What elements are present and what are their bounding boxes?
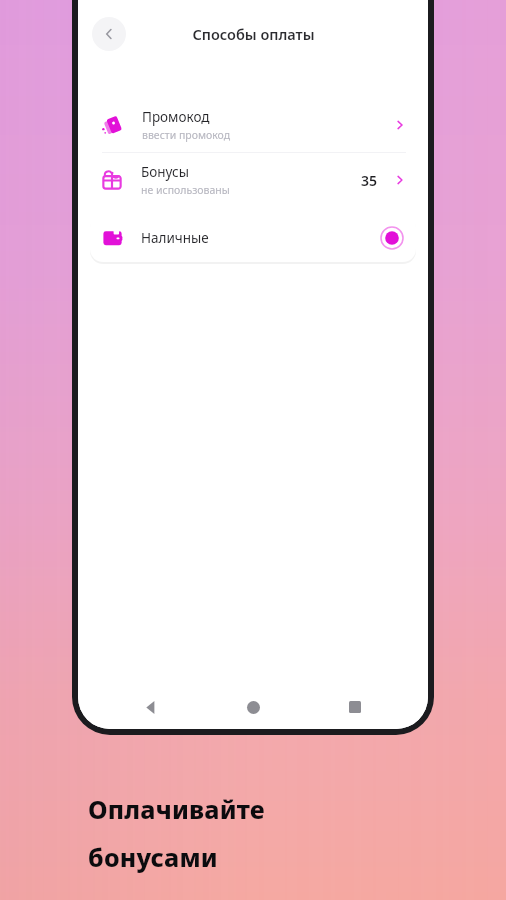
staticText: Промокод bbox=[142, 108, 210, 126]
button[interactable]: Промокод bbox=[78, 98, 428, 152]
button[interactable]: Недавние приложения bbox=[340, 692, 370, 722]
staticText: Бонусы bbox=[141, 163, 189, 181]
button[interactable]: Домой bbox=[238, 692, 268, 722]
button[interactable]: Назад bbox=[136, 692, 166, 722]
button[interactable]: Бонусы bbox=[78, 153, 428, 207]
staticText: Способы оплаты bbox=[192, 24, 315, 44]
button[interactable]: Назад bbox=[92, 17, 126, 51]
staticText: не использованы bbox=[141, 183, 230, 197]
staticText: Наличные bbox=[141, 229, 381, 247]
staticText: бонусами bbox=[88, 840, 218, 874]
staticText: 35 bbox=[361, 171, 378, 190]
staticText: Оплачивайте bbox=[88, 792, 265, 826]
button[interactable]: Наличные bbox=[90, 214, 416, 262]
staticText: ввести промокод bbox=[142, 128, 231, 142]
